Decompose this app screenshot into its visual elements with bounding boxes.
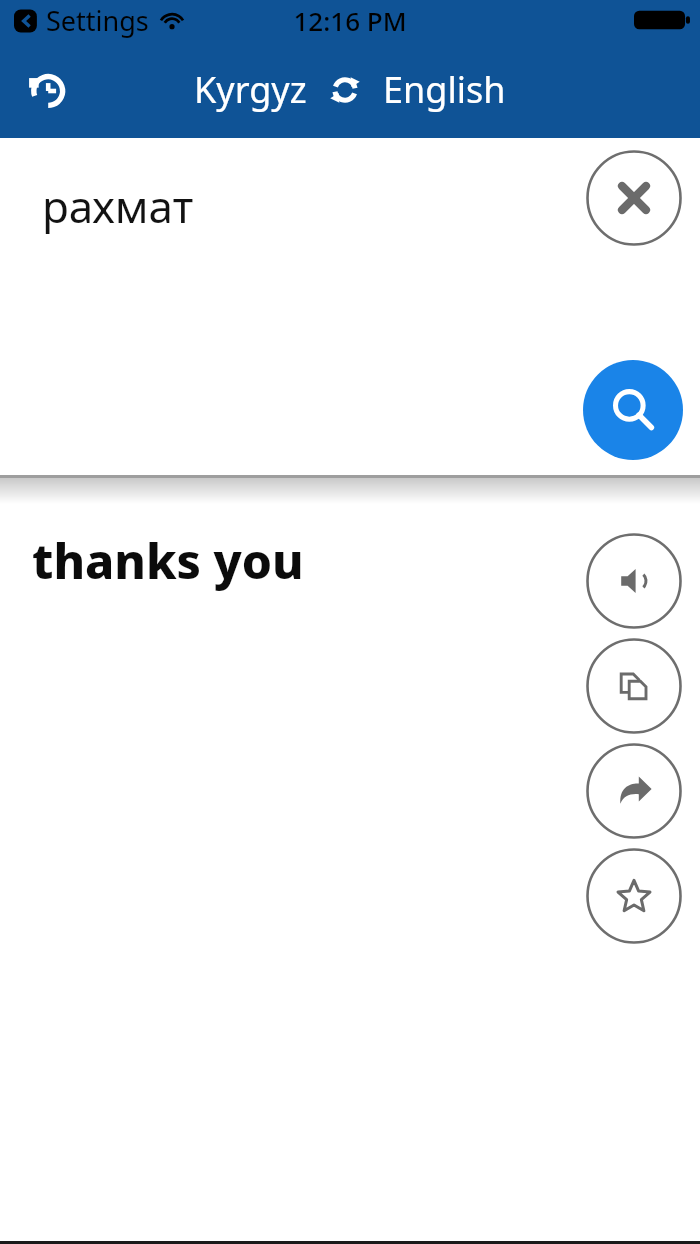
- button[interactable]: Share: [586, 743, 682, 839]
- button[interactable]: History: [18, 60, 76, 118]
- button[interactable]: Swap languages: [321, 66, 369, 114]
- button[interactable]: Favorite: [586, 848, 682, 944]
- button[interactable]: Settings: [10, 2, 189, 39]
- button[interactable]: English: [375, 59, 514, 120]
- staticText: Settings: [46, 2, 149, 39]
- button[interactable]: Copy: [586, 638, 682, 734]
- staticText: Kyrgyz: [194, 65, 307, 114]
- button[interactable]: Kyrgyz: [186, 59, 315, 120]
- staticText: thanks you: [32, 528, 304, 593]
- button[interactable]: Clear: [586, 150, 682, 246]
- staticText: 12:16 PM: [293, 3, 407, 38]
- button[interactable]: Translate: [583, 360, 683, 460]
- button[interactable]: Speak: [586, 533, 682, 629]
- staticText: рахмат: [42, 176, 194, 236]
- staticText: English: [383, 65, 506, 114]
